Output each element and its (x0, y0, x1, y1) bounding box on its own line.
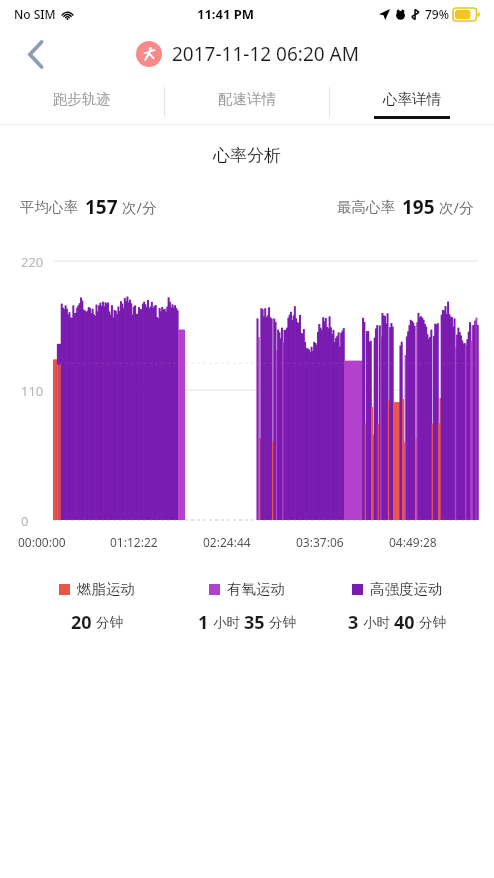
button[interactable]: 跑步轨迹 (0, 80, 164, 124)
staticText: 2017-11-12 06:20 AM (172, 41, 359, 67)
staticText: 平均心率 (20, 198, 78, 216)
staticText: 79% (425, 6, 449, 22)
staticText: No SIM (14, 6, 56, 22)
staticText: 20 (71, 610, 92, 635)
staticText: 燃脂运动 (77, 580, 135, 598)
button[interactable]: 配速详情 (165, 80, 329, 124)
staticText: 00:00:00 (18, 534, 110, 550)
staticText: 分钟 (96, 614, 123, 631)
staticText: 01:12:22 (110, 534, 203, 550)
staticText: 11:41 PM (197, 5, 255, 23)
staticText: 220 (21, 253, 44, 271)
button[interactable]: 有氧运动 (172, 580, 322, 598)
staticText: 195 (402, 194, 435, 220)
staticText: 跑步轨迹 (53, 90, 111, 108)
button[interactable]: 燃脂运动 (22, 580, 172, 598)
button[interactable]: 心率详情 (330, 80, 494, 124)
staticText: 110 (21, 382, 44, 400)
staticText: 高强度运动 (370, 580, 443, 598)
staticText: 有氧运动 (227, 580, 285, 598)
staticText: 40 (394, 610, 415, 635)
staticText: 小时 (363, 614, 390, 631)
staticText: 02:24:44 (203, 534, 296, 550)
button[interactable]: 高强度运动 (322, 580, 472, 598)
staticText: 04:49:28 (389, 534, 482, 550)
staticText: 心率详情 (383, 90, 441, 108)
staticText: 3 (348, 610, 359, 635)
staticText: 分钟 (269, 614, 296, 631)
staticText: 35 (244, 610, 265, 635)
staticText: 最高心率 (337, 198, 395, 216)
staticText: 1 (198, 610, 209, 635)
staticText: 03:37:06 (296, 534, 389, 550)
button[interactable]: Back (14, 32, 58, 76)
staticText: 心率分析 (0, 145, 494, 166)
staticText: 分钟 (419, 614, 446, 631)
staticText: 配速详情 (218, 90, 276, 108)
staticText: 次/分 (122, 197, 157, 217)
staticText: 157 (85, 194, 118, 220)
staticText: 小时 (213, 614, 240, 631)
staticText: 次/分 (439, 197, 474, 217)
staticText: 0 (21, 512, 29, 530)
